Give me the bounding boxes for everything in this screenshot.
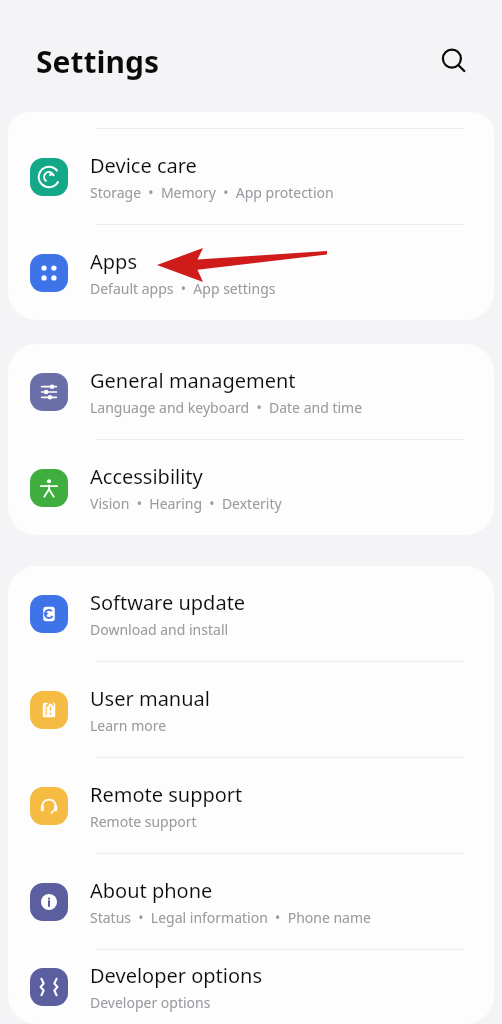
button[interactable]: Accessibility [8,440,494,535]
button[interactable]: Developer options [8,950,494,1024]
staticText: Remote support [90,812,197,831]
staticText: Vision • Hearing • Dexterity [90,494,282,513]
staticText: Software update [90,589,246,616]
button[interactable]: Remote support [8,758,494,853]
staticText: Storage • Memory • App protection [90,183,334,202]
button[interactable]: About phone [8,854,494,949]
staticText: Learn more [90,716,167,735]
button[interactable]: Apps [8,225,494,320]
staticText: About phone [90,877,213,904]
staticText: User manual [90,685,210,712]
button[interactable]: Device care [8,129,494,224]
staticText: Developer options [90,993,211,1012]
button[interactable]: Software update [8,566,494,661]
staticText: Download and install [90,620,229,639]
staticText: Device care [90,152,197,179]
staticText: Remote support [90,781,243,808]
button[interactable]: General management [8,344,494,439]
staticText: Apps [90,248,137,275]
button[interactable]: Search [432,39,476,83]
button[interactable]: User manual [8,662,494,757]
staticText: Settings [36,41,159,82]
staticText: General management [90,367,296,394]
staticText: Language and keyboard • Date and time [90,398,363,417]
staticText: Default apps • App settings [90,279,276,298]
staticText: Accessibility [90,463,203,490]
staticText: Status • Legal information • Phone name [90,908,371,927]
staticText: Developer options [90,962,263,989]
